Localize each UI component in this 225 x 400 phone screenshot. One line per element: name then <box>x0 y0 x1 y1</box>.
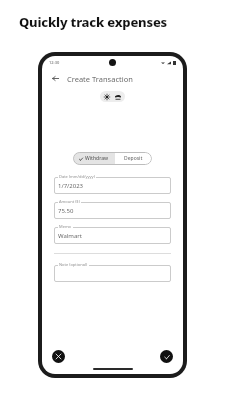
button[interactable]: 1/7/2023 <box>54 174 171 194</box>
button[interactable]: Withdraw <box>73 152 115 165</box>
staticText: 12:30 <box>49 60 60 65</box>
staticText: Walmart <box>58 232 82 240</box>
staticText: Date (mm/dd/yyyy) <box>59 174 95 179</box>
button[interactable]: Back <box>49 72 62 85</box>
staticText: Memo <box>59 224 72 229</box>
button[interactable]: 75.50 <box>54 199 171 219</box>
button[interactable]: Note (optional) <box>54 262 171 282</box>
button[interactable]: Light theme <box>103 93 111 101</box>
button[interactable]: Save transaction <box>160 350 173 363</box>
staticText: Quickly track expenses <box>19 13 167 31</box>
button[interactable]: Dark theme <box>114 93 122 101</box>
button[interactable]: Walmart <box>54 224 171 244</box>
staticText: Deposit <box>124 155 143 162</box>
button[interactable]: Deposit <box>115 152 152 165</box>
staticText: Note (optional) <box>59 262 88 267</box>
staticText: 1/7/2023 <box>58 182 84 190</box>
staticText: Withdraw <box>85 155 109 162</box>
staticText: Create Transaction <box>67 74 133 84</box>
staticText: Amount ($) <box>59 199 80 204</box>
staticText: 75.50 <box>58 207 74 215</box>
button[interactable]: Cancel <box>52 350 65 363</box>
